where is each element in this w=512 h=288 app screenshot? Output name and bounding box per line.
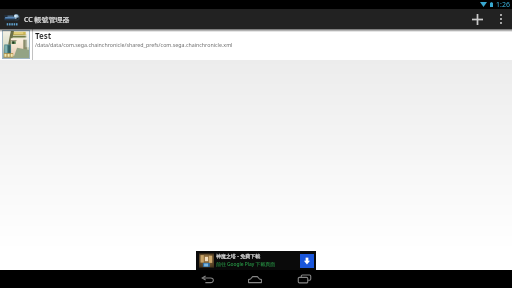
staticText: CC 帳號管理器	[24, 15, 70, 25]
button[interactable]: More options	[489, 9, 512, 29]
staticText: 神魔之塔 - 免費下載	[216, 253, 261, 260]
staticText: Test	[35, 30, 52, 41]
staticText: 1:26	[496, 0, 510, 9]
button[interactable]: Home	[248, 270, 262, 288]
button[interactable]: Test	[0, 29, 512, 60]
button[interactable]: Download	[300, 254, 314, 268]
button[interactable]: Add	[465, 9, 489, 29]
button[interactable]: Back	[201, 270, 214, 288]
button[interactable]: 神魔之塔 - 免費下載	[196, 251, 316, 270]
staticText: 前往 Google Play 下載頁面	[216, 261, 276, 268]
staticText: /data/data/com.sega.chainchronicle/share…	[35, 41, 233, 48]
button[interactable]: Recents	[298, 270, 311, 288]
